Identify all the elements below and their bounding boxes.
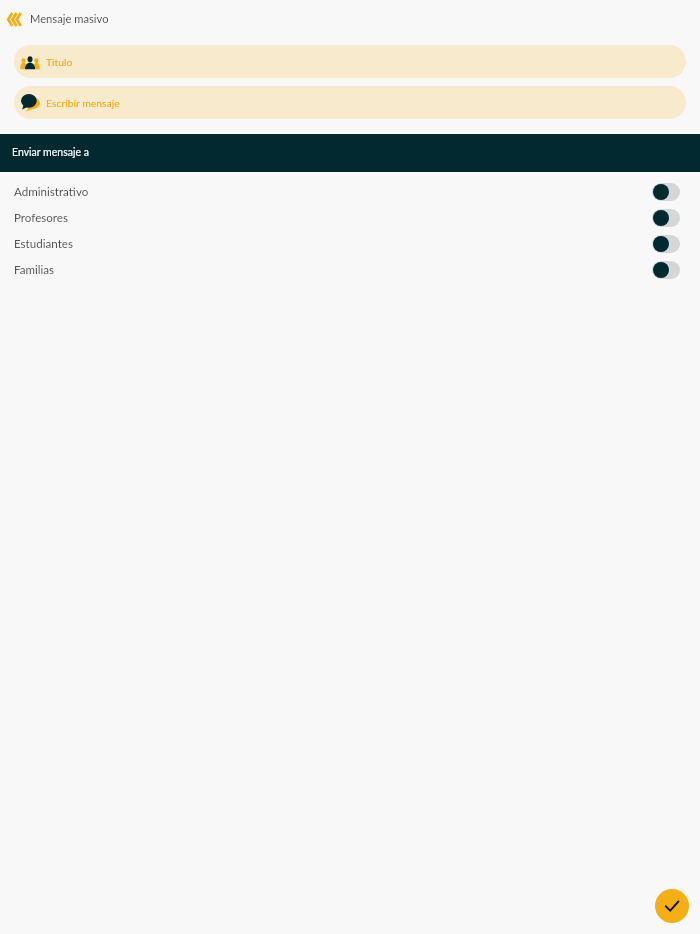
- button[interactable]: Titulo: [14, 45, 686, 78]
- button[interactable]: Profesores: [0, 205, 700, 231]
- button[interactable]: Administrativo: [0, 179, 700, 205]
- button[interactable]: Estudiantes: [0, 231, 700, 257]
- button[interactable]: Escribir mensaje: [14, 86, 686, 119]
- staticText: Administrativo: [14, 185, 89, 199]
- staticText: Titulo: [46, 56, 73, 68]
- staticText: Profesores: [14, 211, 68, 225]
- button[interactable]: Confirmar: [655, 889, 689, 923]
- staticText: Estudiantes: [14, 237, 73, 251]
- staticText: Familias: [14, 263, 55, 277]
- staticText: Escribir mensaje: [46, 97, 120, 109]
- button[interactable]: Familias: [0, 257, 700, 283]
- staticText: Mensaje masivo: [30, 12, 109, 25]
- staticText: Enviar mensaje a: [12, 146, 89, 159]
- button[interactable]: Back: [3, 8, 25, 30]
